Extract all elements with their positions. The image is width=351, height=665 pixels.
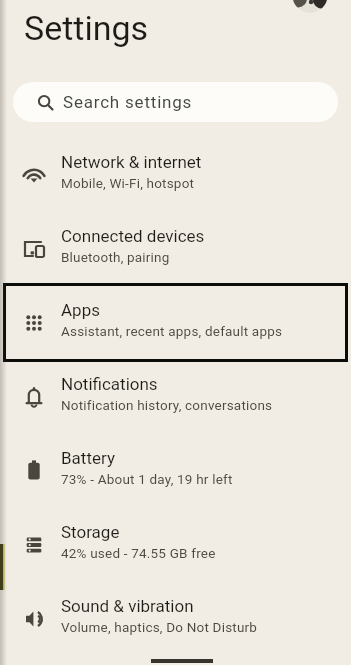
button[interactable]: Connected devices bbox=[0, 210, 351, 284]
button[interactable]: Sound & vibration bbox=[0, 580, 351, 654]
button[interactable]: Search settings bbox=[13, 82, 338, 122]
staticText: Assistant, recent apps, default apps bbox=[61, 323, 283, 339]
button[interactable]: Apps bbox=[0, 284, 351, 358]
button[interactable]: Notifications bbox=[0, 358, 351, 432]
button[interactable]: Network & internet bbox=[0, 136, 351, 210]
staticText: Volume, haptics, Do Not Disturb bbox=[61, 619, 258, 635]
staticText: Sound & vibration bbox=[61, 596, 194, 616]
staticText: 73% - About 1 day, 19 hr left bbox=[61, 471, 233, 487]
staticText: Battery bbox=[61, 448, 115, 468]
staticText: Apps bbox=[61, 300, 100, 320]
staticText: Network & internet bbox=[61, 152, 202, 172]
staticText: Search settings bbox=[63, 92, 193, 112]
staticText: Notifications bbox=[61, 374, 158, 394]
staticText: Connected devices bbox=[61, 226, 205, 246]
staticText: Settings bbox=[24, 8, 149, 48]
button[interactable]: Storage bbox=[0, 506, 351, 580]
staticText: Bluetooth, pairing bbox=[61, 249, 170, 265]
staticText: Storage bbox=[61, 522, 120, 542]
button[interactable]: Battery bbox=[0, 432, 351, 506]
staticText: Notification history, conversations bbox=[61, 397, 273, 413]
staticText: 42% used - 74.55 GB free bbox=[61, 545, 216, 561]
staticText: Mobile, Wi-Fi, hotspot bbox=[61, 175, 195, 191]
